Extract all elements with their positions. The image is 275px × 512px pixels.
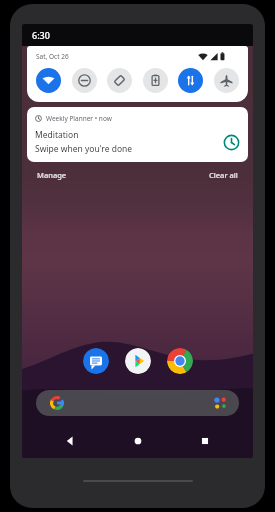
button[interactable]: Do Not Disturb <box>72 68 97 93</box>
button[interactable]: Weekly Planner • now <box>27 107 248 162</box>
staticText: Clear all <box>209 170 238 180</box>
button[interactable]: Google search <box>36 390 239 416</box>
staticText: Weekly Planner • now <box>46 114 112 123</box>
staticText: Meditation <box>35 129 79 141</box>
button[interactable]: Play Store <box>125 348 151 374</box>
staticText: Swipe when you're done <box>35 143 133 155</box>
button[interactable]: Wi-Fi <box>36 68 61 93</box>
button[interactable]: Battery Saver <box>143 68 168 93</box>
button[interactable]: Chrome <box>167 348 193 374</box>
staticText: Sat, Oct 26 <box>36 52 69 61</box>
button[interactable]: Manage <box>35 168 69 182</box>
button[interactable]: Messages <box>83 348 109 374</box>
staticText: Manage <box>37 170 67 180</box>
button[interactable]: Mobile data <box>178 68 203 93</box>
button[interactable]: Recents <box>185 426 225 456</box>
staticText: 6:30 <box>32 29 50 41</box>
button[interactable]: Home <box>118 426 158 456</box>
button[interactable]: Airplane mode <box>214 68 239 93</box>
button[interactable]: Clear all <box>207 168 240 182</box>
button[interactable]: Back <box>50 426 90 456</box>
button[interactable]: Auto rotate <box>107 68 132 93</box>
